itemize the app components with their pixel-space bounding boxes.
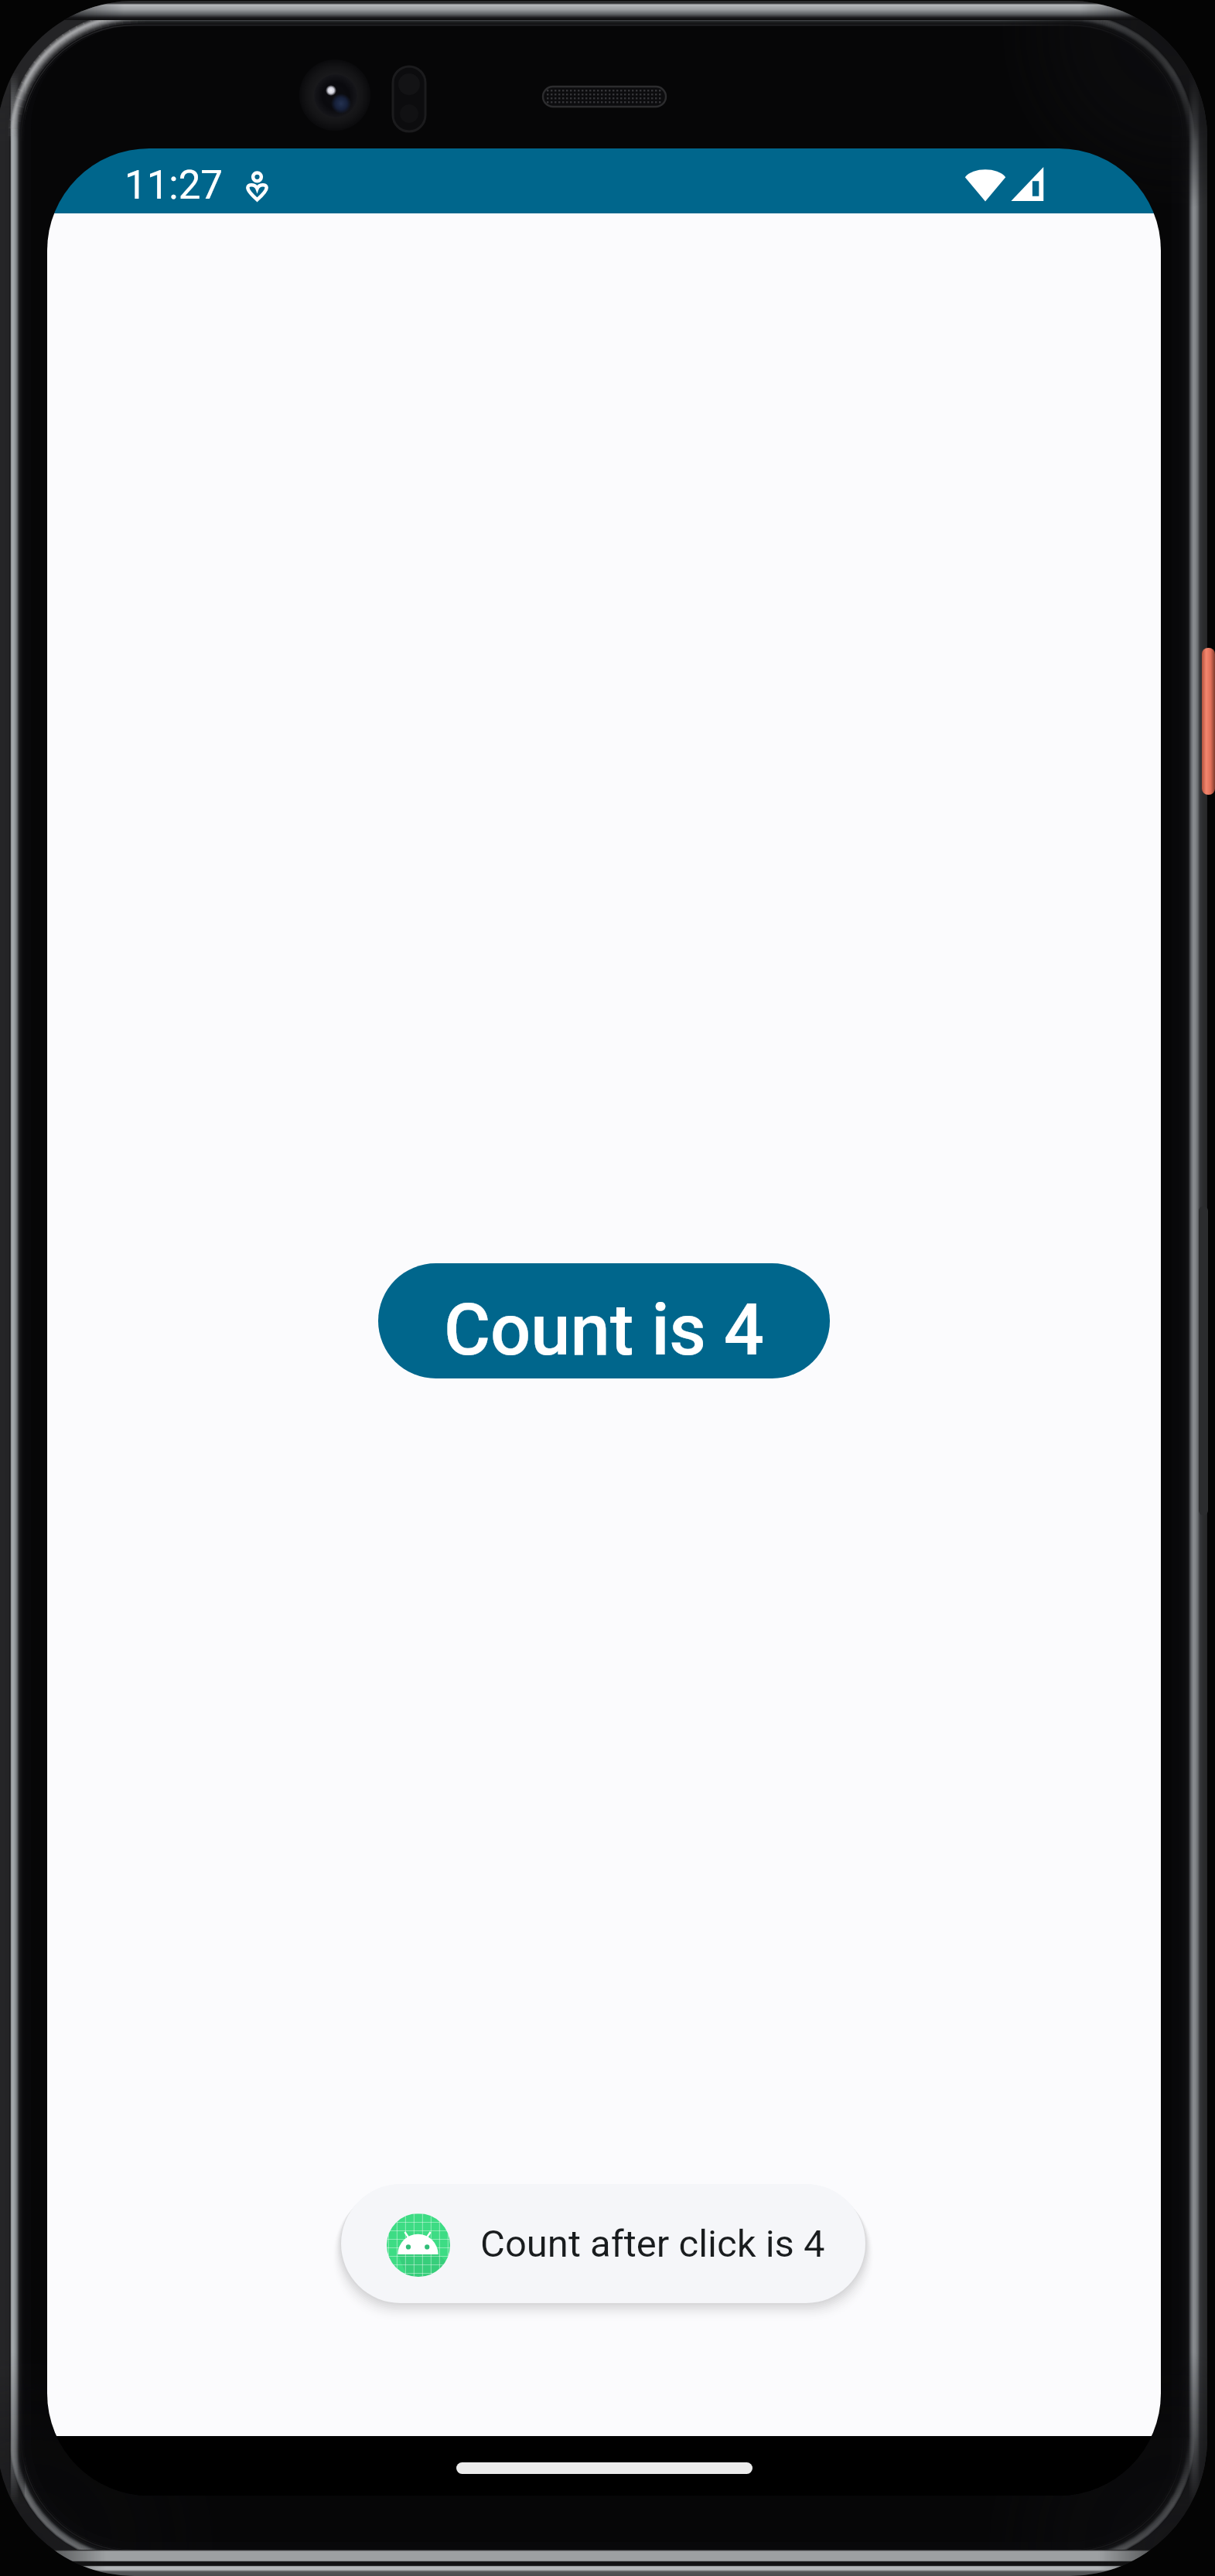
staticText: Count after click is 4 [480,2222,825,2266]
staticText: Count is 4 [444,1289,765,1372]
button[interactable]: Count is 4 [378,1263,830,1378]
staticText: 11:27 [125,162,224,209]
